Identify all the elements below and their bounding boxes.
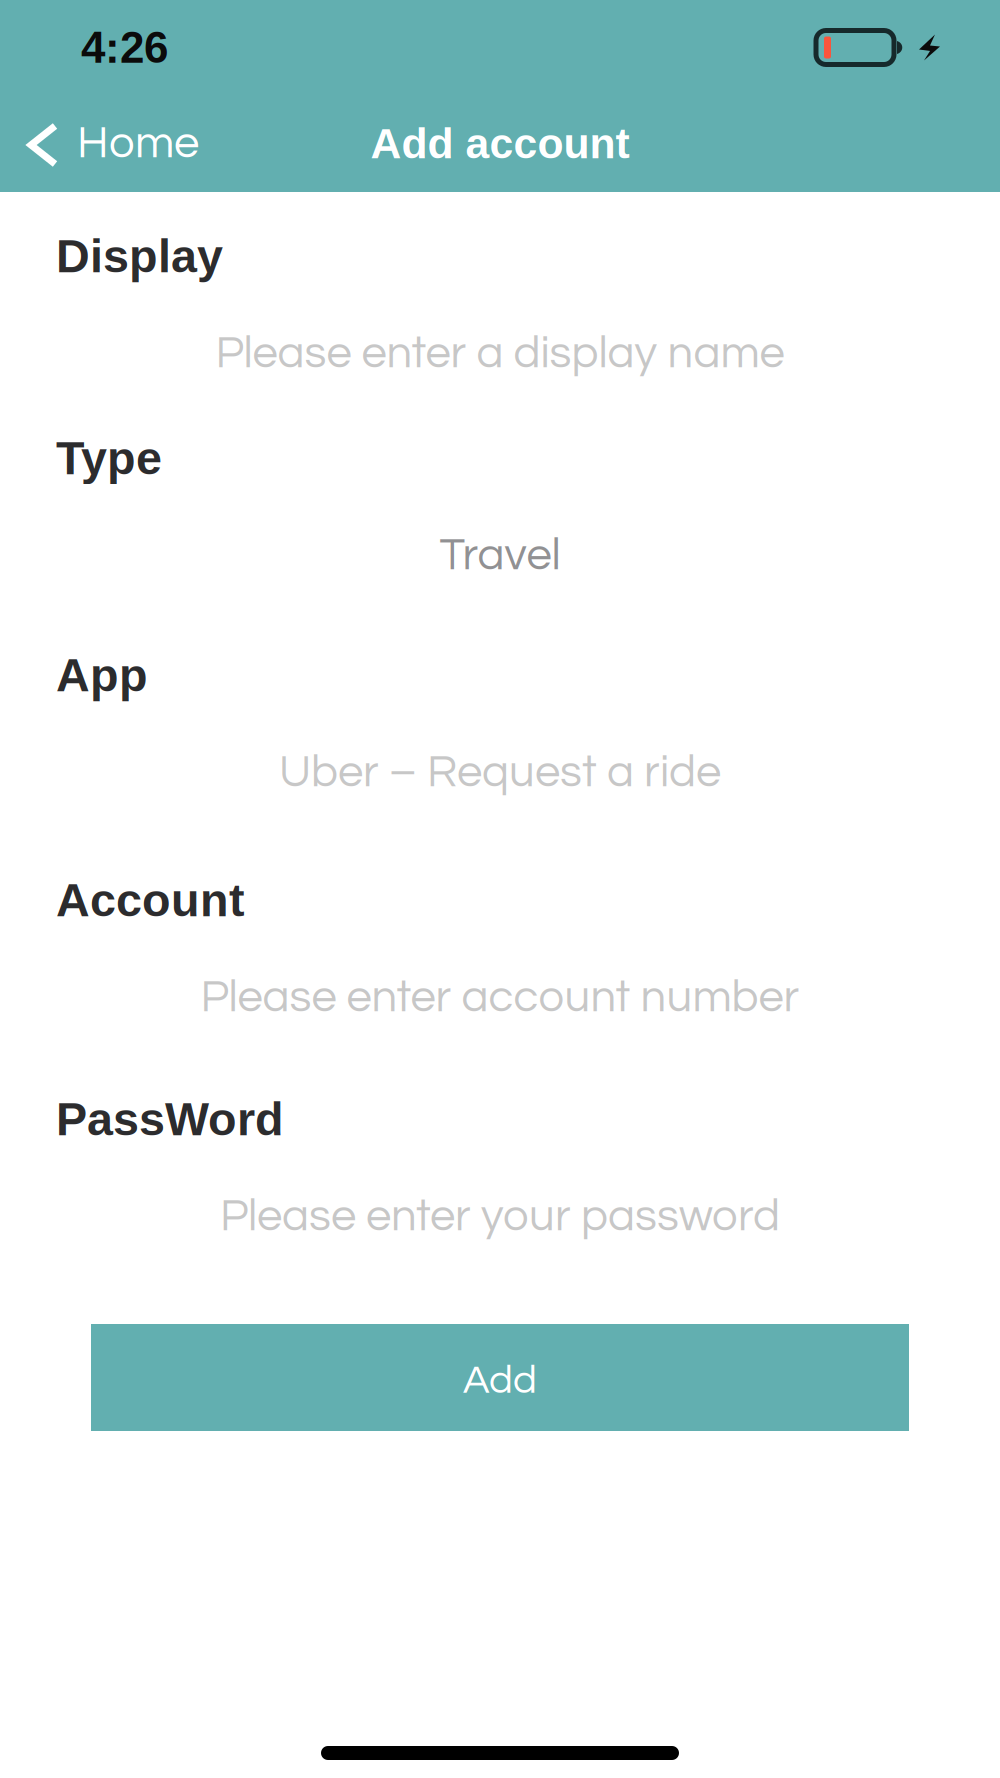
button[interactable]: Add [91,1324,909,1431]
button[interactable]: Please enter a display name [0,308,1000,418]
staticText: Please enter a display name [215,330,784,377]
staticText: Display [56,230,223,282]
button[interactable]: Back to Home [0,95,223,192]
staticText: App [56,649,148,701]
button[interactable]: Please enter account number [0,952,1000,1072]
staticText: PassWord [56,1093,284,1145]
button[interactable]: Uber – Request a ride [0,727,1000,847]
staticText: Type [56,432,162,484]
staticText: Uber – Request a ride [279,749,721,796]
staticText: Please enter your password [220,1193,780,1240]
staticText: Add account [370,120,629,167]
staticText: Account [56,874,245,926]
staticText: Please enter account number [200,974,799,1021]
button[interactable]: Please enter your password [0,1171,1000,1291]
button[interactable]: Travel [0,510,1000,630]
staticText: 4:26 [81,23,168,72]
staticText: Add [463,1360,537,1401]
staticText: Home [77,120,199,167]
staticText: Travel [439,532,560,579]
